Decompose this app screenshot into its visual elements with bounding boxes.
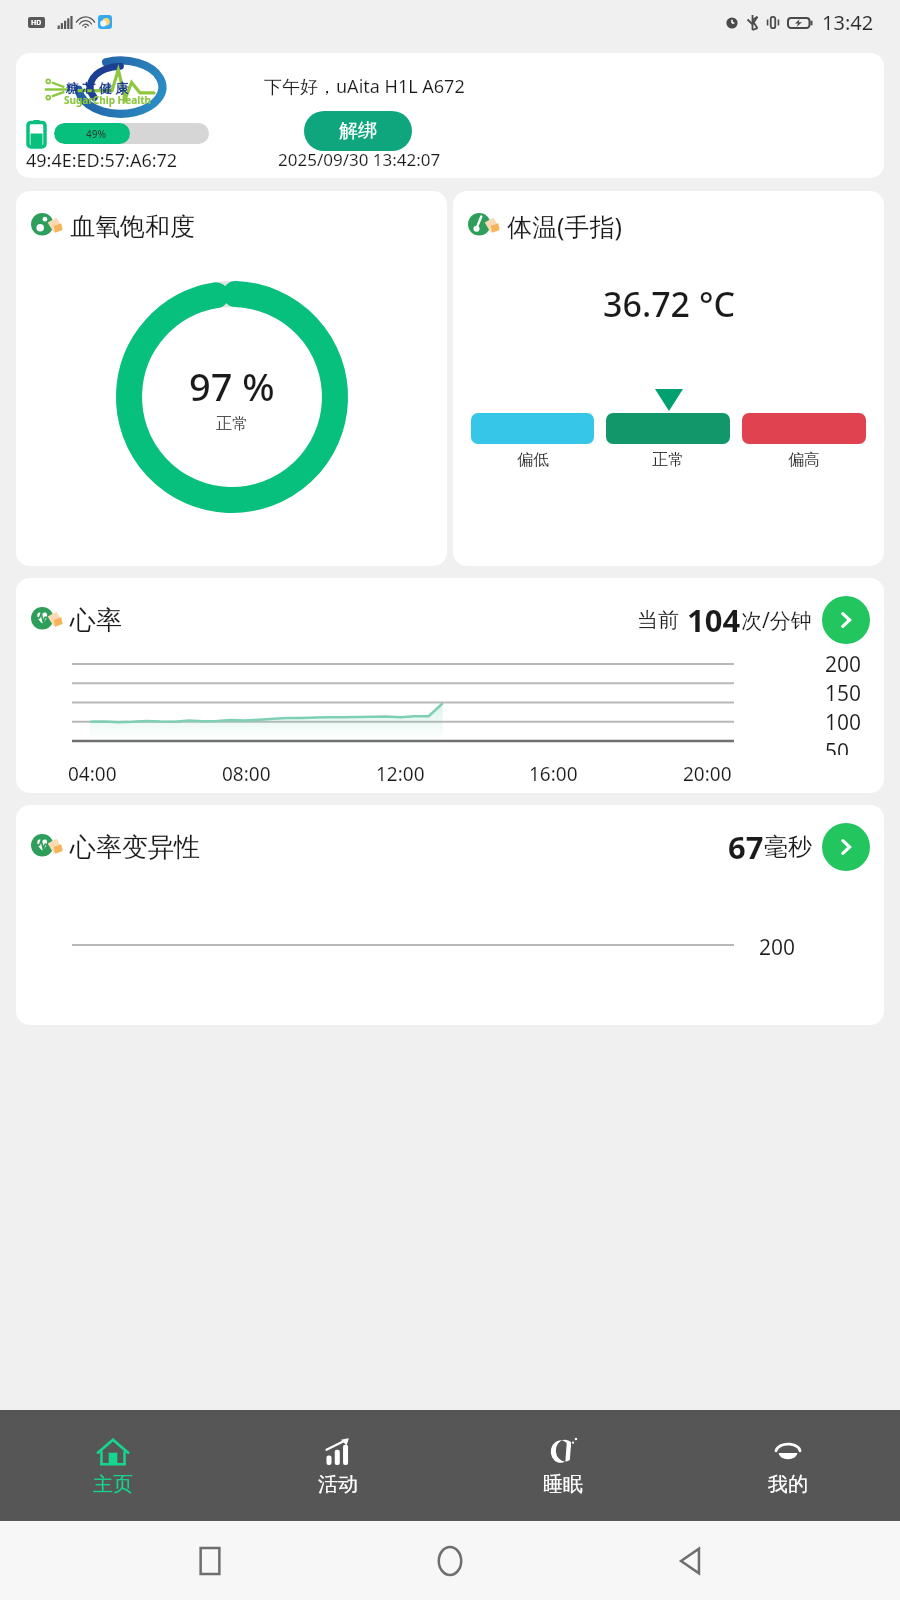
staticText: 毫秒 (764, 832, 812, 862)
staticText: 主页 (93, 1472, 133, 1497)
staticText: 心率 (70, 604, 122, 637)
staticText: 次/分钟 (741, 606, 812, 635)
staticText: 08:00 (222, 761, 271, 787)
staticText: 正常 (216, 414, 248, 434)
staticText: 16:00 (529, 761, 578, 787)
staticText: 2025/09/30 13:42:07 (278, 148, 441, 171)
button[interactable]: 查看详情 (822, 596, 870, 644)
staticText: 100 (825, 708, 862, 737)
button[interactable]: 活动 (225, 1410, 450, 1521)
staticText: SugarChip Health (64, 93, 152, 107)
staticText: 97 % (189, 360, 275, 412)
staticText: 糖 芯 健 康 (66, 79, 129, 97)
button[interactable]: 睡眠 (450, 1410, 675, 1521)
button[interactable]: 血氧饱和度 (16, 191, 447, 566)
staticText: 偏高 (788, 450, 820, 470)
staticText: 我的 (768, 1472, 808, 1497)
staticText: 50 (825, 737, 850, 755)
staticText: 200 (759, 933, 796, 962)
staticText: 150 (825, 679, 862, 708)
button[interactable]: Recents (180, 1531, 240, 1591)
staticText: 血氧饱和度 (70, 211, 195, 242)
staticText: 20:00 (683, 761, 732, 787)
button[interactable]: 糖 芯 健 康 (16, 53, 884, 178)
staticText: 49:4E:ED:57:A6:72 (26, 148, 178, 173)
staticText: 200 (825, 650, 862, 679)
staticText: HD (31, 18, 42, 28)
button[interactable]: Home (420, 1531, 480, 1591)
button[interactable]: Back (660, 1531, 720, 1591)
staticText: 12:00 (376, 761, 425, 787)
button[interactable]: 心率 (16, 578, 884, 793)
button[interactable]: 解绑 (304, 111, 412, 151)
staticText: 心率变异性 (70, 831, 200, 864)
button[interactable]: 体温(手指) (453, 191, 884, 566)
button[interactable]: 主页 (0, 1410, 225, 1521)
staticText: 活动 (318, 1472, 358, 1497)
button[interactable]: 查看详情 (822, 823, 870, 871)
staticText: 13:42 (822, 9, 874, 36)
staticText: 67 (728, 826, 764, 868)
staticText: 体温(手指) (507, 209, 623, 243)
staticText: 睡眠 (543, 1472, 583, 1497)
button[interactable]: 我的 (675, 1410, 900, 1521)
staticText: 正常 (652, 450, 684, 470)
staticText: 解绑 (339, 119, 377, 143)
staticText: 36.72 °C (603, 281, 735, 327)
button[interactable]: 心率变异性 (16, 805, 884, 1025)
staticText: 当前 (637, 607, 679, 633)
staticText: 偏低 (517, 450, 549, 470)
staticText: 49% (86, 127, 106, 141)
staticText: 04:00 (68, 761, 117, 787)
staticText: 104 (679, 599, 741, 641)
staticText: 下午好，uAita H1L A672 (264, 74, 465, 99)
